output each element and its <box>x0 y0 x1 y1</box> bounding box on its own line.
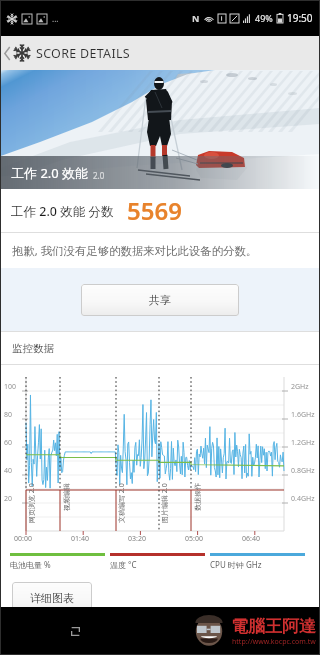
staticText: 電腦王阿達 <box>231 616 316 637</box>
button[interactable]: 详细图表 <box>12 582 92 614</box>
staticText: 网页浏览 2.0 <box>27 483 37 523</box>
staticText: N <box>192 12 200 24</box>
staticText: SCORE DETAILS <box>36 45 130 62</box>
staticText: 图片编辑 2.0 <box>160 483 170 523</box>
staticText: http://www.kocpc.com.tw <box>232 637 316 647</box>
staticText: 00:00 <box>14 534 32 544</box>
staticText: 80 <box>4 410 13 420</box>
staticText: 文稿编写 2.0 <box>117 483 127 523</box>
button[interactable]: Back <box>1 41 13 65</box>
staticText: 温度 °C <box>110 559 137 570</box>
button[interactable]: 共享 <box>81 284 239 316</box>
staticText: 工作 2.0 效能 <box>11 164 89 182</box>
staticText: 40 <box>4 466 13 476</box>
staticText: 电池电量 % <box>10 559 51 570</box>
staticText: 1.6GHz <box>291 410 315 420</box>
staticText: 60 <box>4 438 13 448</box>
staticText: 49% <box>255 12 273 24</box>
staticText: 数据操作 <box>193 483 202 511</box>
staticText: 1.2GHz <box>291 438 315 448</box>
staticText: 2GHz <box>291 382 309 392</box>
staticText: 2.0 <box>93 170 105 181</box>
staticText: 抱歉, 我们没有足够的数据来对比此设备的分数。 <box>12 243 258 259</box>
staticText: CPU 时钟 GHz <box>210 559 262 570</box>
staticText: 06:40 <box>242 534 260 544</box>
staticText: 20 <box>4 494 13 504</box>
staticText: 视频编辑 <box>62 483 71 511</box>
staticText: 19:50 <box>287 11 313 25</box>
staticText: 03:20 <box>128 534 146 544</box>
staticText: 05:00 <box>185 534 203 544</box>
staticText: 01:40 <box>71 534 89 544</box>
staticText: 共享 <box>149 293 171 307</box>
staticText: 0.8GHz <box>291 466 315 476</box>
staticText: 100 <box>4 382 17 392</box>
staticText: 详细图表 <box>30 591 74 605</box>
button[interactable]: Recents <box>60 616 90 646</box>
staticText: 0.4GHz <box>291 494 315 504</box>
staticText: 5569 <box>127 194 182 227</box>
staticText: 监控数据 <box>12 342 54 355</box>
staticText: ... <box>52 13 59 24</box>
staticText: 工作 2.0 效能 分数 <box>11 203 114 220</box>
